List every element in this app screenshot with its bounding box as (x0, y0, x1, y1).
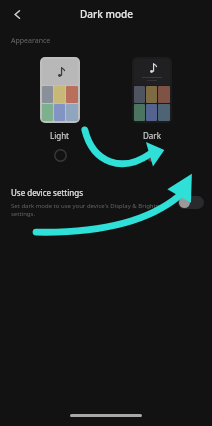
button[interactable]: Use device settings (0, 182, 212, 223)
staticText: Set dark mode to use your device's Displ… (11, 202, 172, 218)
button[interactable]: Back (6, 3, 28, 25)
staticText: Light (50, 130, 70, 141)
button[interactable]: Light (21, 57, 99, 162)
staticText: Use device settings (11, 187, 83, 198)
staticText: Dark (143, 130, 161, 141)
button[interactable] (178, 196, 204, 209)
staticText: Dark mode (80, 7, 133, 21)
button[interactable]: Dark (113, 57, 191, 162)
staticText: Appearance (11, 36, 51, 46)
